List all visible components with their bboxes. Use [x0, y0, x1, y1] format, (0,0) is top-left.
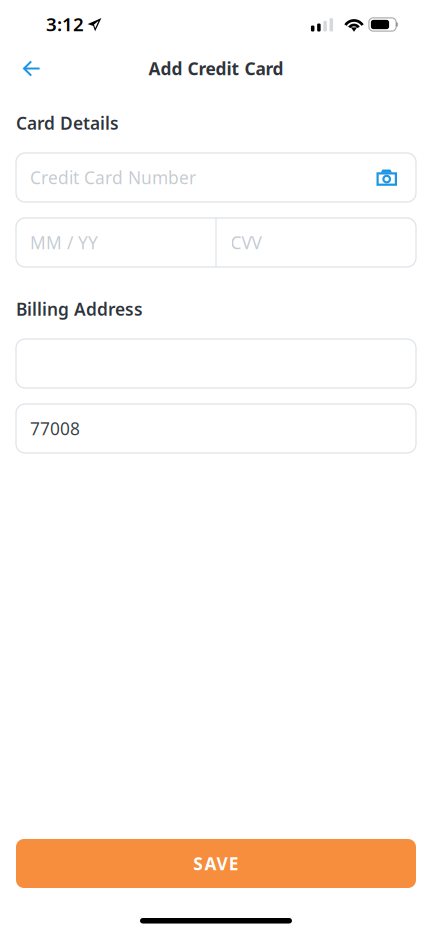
staticText: Card Details — [16, 111, 119, 134]
staticText: Credit Card Number — [30, 166, 196, 189]
staticText: CVV — [231, 231, 262, 254]
staticText: 3:12 — [46, 12, 84, 36]
staticText: MM / YY — [30, 231, 98, 254]
staticText: SAVE — [193, 852, 239, 875]
staticText: Add Credit Card — [148, 57, 283, 80]
button[interactable]: 77008 — [16, 404, 416, 453]
button[interactable]: Back — [0, 42, 56, 94]
staticText: 77008 — [30, 417, 80, 440]
staticText: Billing Address — [16, 297, 143, 320]
button[interactable] — [16, 339, 416, 388]
button[interactable]: SAVE — [16, 839, 416, 888]
button[interactable]: Credit Card Number — [16, 153, 416, 202]
button[interactable]: MM / YY — [16, 218, 416, 267]
